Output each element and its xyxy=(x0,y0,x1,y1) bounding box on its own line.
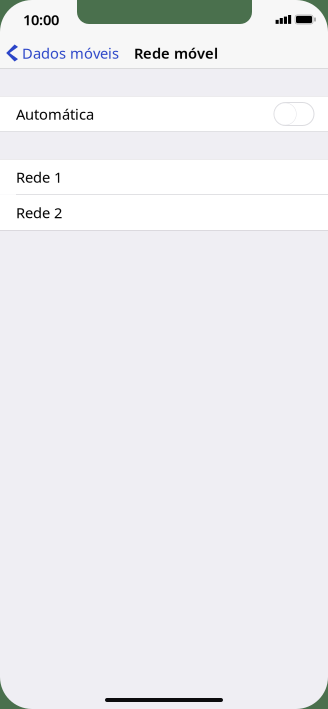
staticText: Rede 2 xyxy=(16,203,62,222)
button[interactable]: Dados móveis xyxy=(0,37,123,69)
button[interactable]: Automática xyxy=(0,96,328,131)
staticText: 10:00 xyxy=(23,10,59,29)
button[interactable]: Rede 2 xyxy=(0,195,328,230)
staticText: Automática xyxy=(16,104,94,124)
staticText: Rede móvel xyxy=(134,43,218,63)
button[interactable]: Rede 1 xyxy=(0,159,328,194)
staticText: Rede 1 xyxy=(16,167,62,187)
staticText: Dados móveis xyxy=(22,43,119,63)
